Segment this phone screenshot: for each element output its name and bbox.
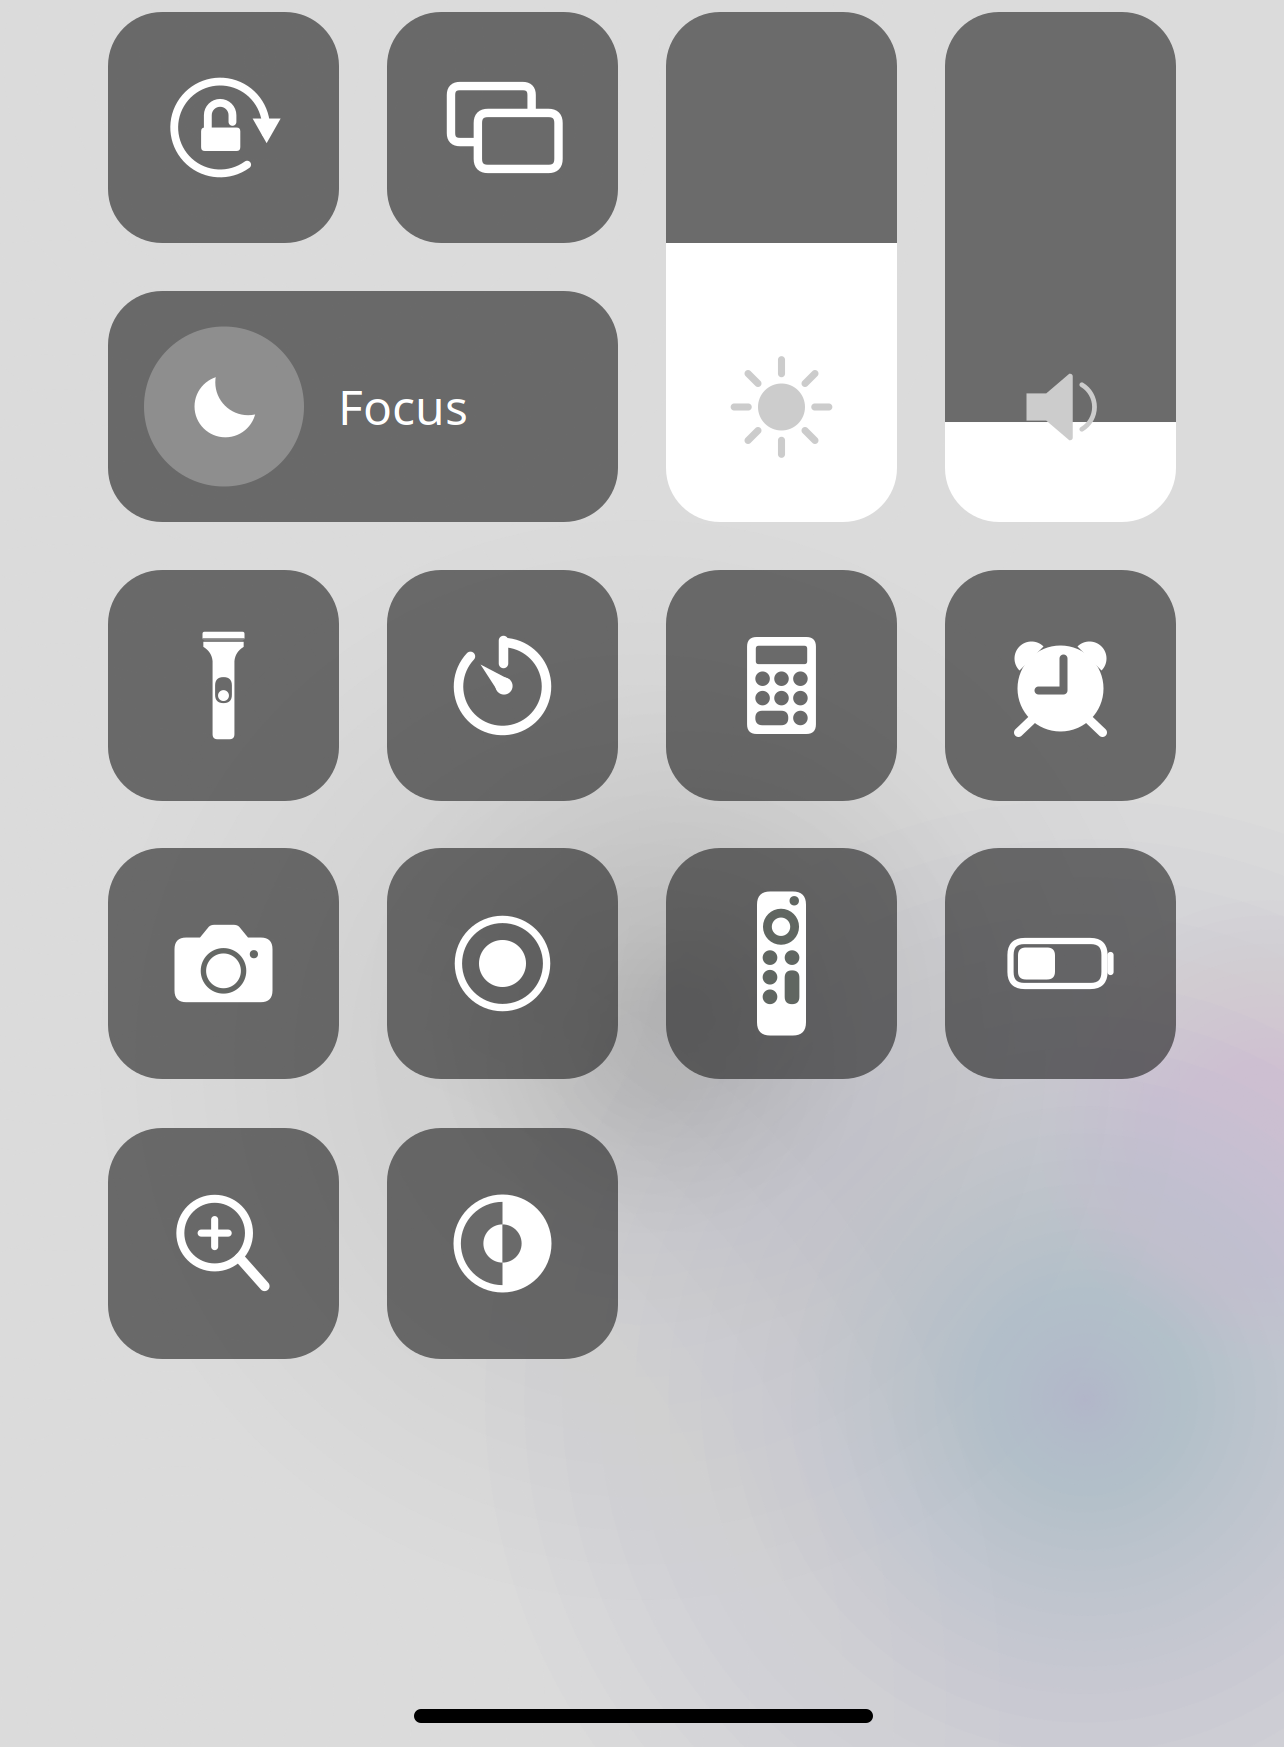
button[interactable]: Magnifier <box>108 1128 339 1359</box>
button[interactable]: Timer <box>387 570 618 801</box>
button[interactable]: Calculator <box>666 570 897 801</box>
button[interactable]: Flashlight <box>108 570 339 801</box>
button[interactable]: Screen Mirroring <box>387 12 618 243</box>
button[interactable]: Brightness <box>666 12 897 522</box>
button[interactable]: Camera <box>108 848 339 1079</box>
button[interactable]: Focus <box>108 291 618 522</box>
button[interactable]: Rotation Lock <box>108 12 339 243</box>
button[interactable]: Dark Mode <box>387 1128 618 1359</box>
button[interactable]: Low Power Mode <box>945 848 1176 1079</box>
button[interactable]: Alarm <box>945 570 1176 801</box>
button[interactable]: Apple TV Remote <box>666 848 897 1079</box>
button[interactable]: Screen Recording <box>387 848 618 1079</box>
button[interactable]: Volume <box>945 12 1176 522</box>
staticText: Focus <box>338 375 468 438</box>
